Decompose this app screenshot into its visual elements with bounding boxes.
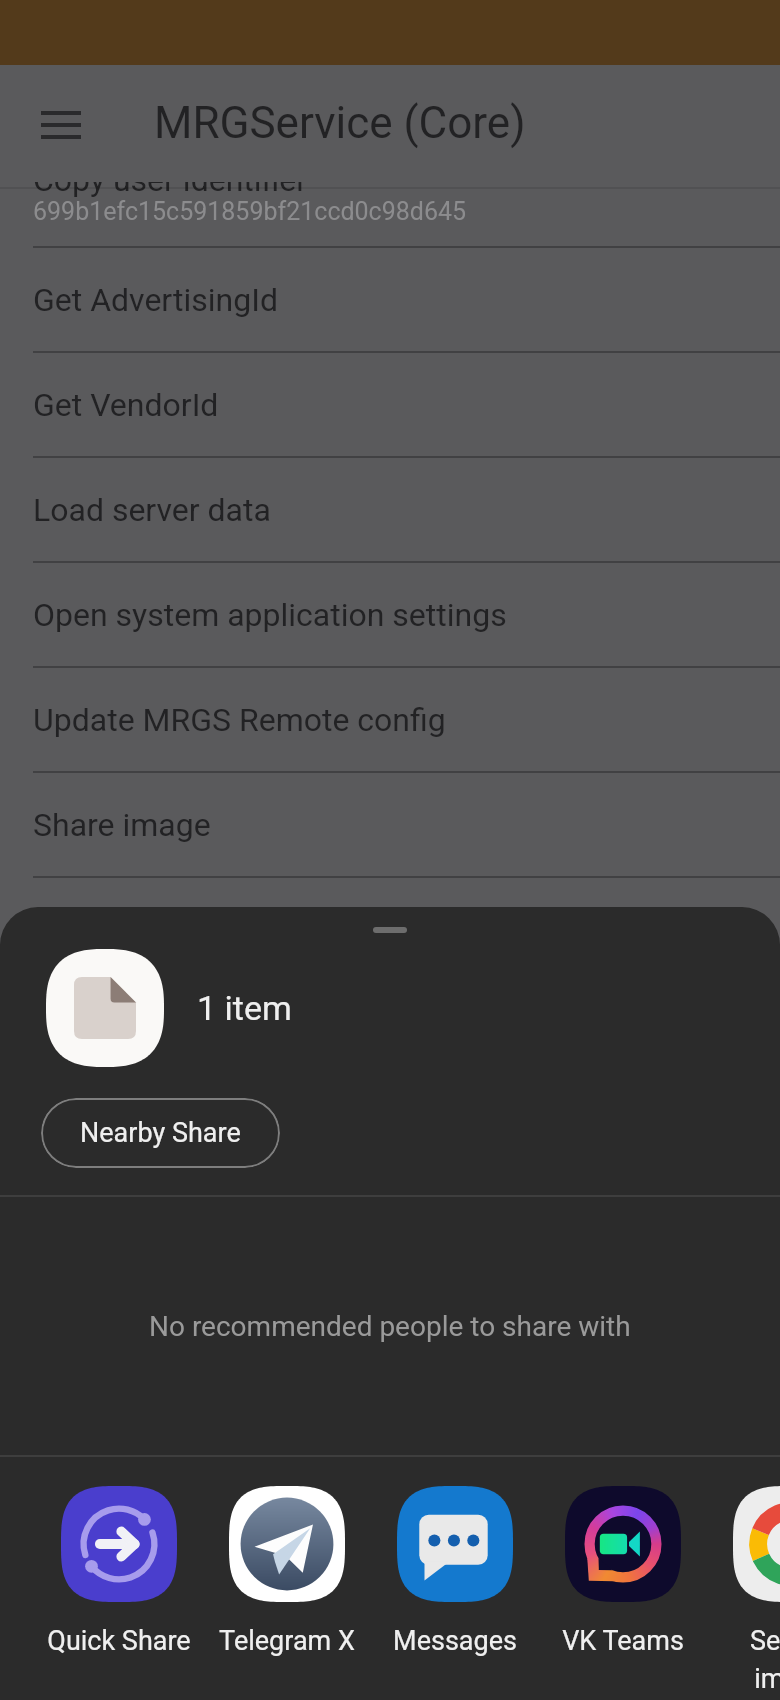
button[interactable]: Nearby Share [41,1098,280,1168]
staticText: Get VendorId [33,386,219,424]
staticText: Copy user identifier [33,161,308,199]
button[interactable]: Share image [0,773,780,876]
staticText: Telegram X [219,1625,355,1657]
button[interactable]: Get VendorId [0,353,780,456]
staticText: Load server data [33,491,271,529]
button[interactable]: Messages [371,1457,539,1657]
staticText: Search image [750,1625,780,1695]
button[interactable]: Open system application settings [0,563,780,666]
staticText: Quick Share [47,1625,191,1657]
button[interactable]: Open navigation menu [0,65,122,182]
staticText: Open system application settings [33,596,507,634]
button[interactable]: Search image [707,1457,780,1695]
button[interactable]: Load server data [0,458,780,561]
staticText: VK Teams [562,1625,684,1657]
button[interactable]: Update MRGS Remote config [0,668,780,771]
button[interactable]: VK Teams [539,1457,707,1657]
staticText: Get AdvertisingId [33,281,278,319]
staticText: No recommended people to share with [149,1310,631,1343]
staticText: Update MRGS Remote config [33,701,446,739]
staticText: 1 item [197,988,292,1028]
staticText: Nearby Share [80,1117,241,1149]
button[interactable]: Get AdvertisingId [0,248,780,351]
staticText: MRGService (Core) [154,97,526,149]
staticText: 699b1efc15c591859bf21ccd0c98d645 [33,197,467,226]
button[interactable]: Quick Share [35,1457,203,1657]
staticText: Share image [33,806,211,844]
button[interactable]: Telegram X [203,1457,371,1657]
staticText: Messages [393,1625,517,1657]
